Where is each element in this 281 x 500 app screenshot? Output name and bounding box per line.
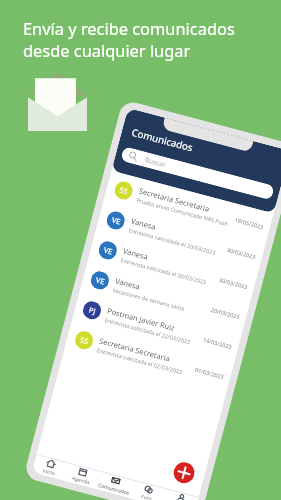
button[interactable]: Buscar xyxy=(120,146,275,200)
staticText: VE xyxy=(103,244,114,256)
staticText: SS xyxy=(79,334,90,346)
staticText: Entrevista cancelada el 20/03/2023 xyxy=(128,226,217,256)
staticText: Entrevista solicitada el 30/03/2023 xyxy=(120,256,207,285)
staticText: VE xyxy=(95,274,106,286)
staticText: 01/03/2023 xyxy=(194,366,225,380)
staticText: Envía y recibe comunicados xyxy=(23,17,235,39)
staticText: Vanesa xyxy=(114,275,142,292)
staticText: SS xyxy=(118,185,130,197)
staticText: Vanesa xyxy=(130,216,158,232)
staticText: Buscar xyxy=(144,155,167,169)
staticText: Agenda xyxy=(71,475,91,486)
staticText: 14/03/2023 xyxy=(202,336,233,350)
button[interactable]: VE xyxy=(88,231,258,303)
staticText: Postman Javier Ruiz xyxy=(106,305,176,333)
button[interactable]: Agenda xyxy=(64,462,100,488)
staticText: Inicio xyxy=(42,467,56,477)
button[interactable]: PJ xyxy=(72,290,242,363)
staticText: 20/03/2023 xyxy=(210,306,241,320)
staticText: 30/03/2023 xyxy=(226,246,257,260)
button[interactable]: SS xyxy=(64,320,234,393)
staticText: PJ xyxy=(88,305,97,316)
staticText: Entrevista solicitada el 02/03/2023 xyxy=(96,346,183,375)
button[interactable]: Comunicados xyxy=(96,471,133,497)
button[interactable]: Perfil xyxy=(161,488,199,500)
staticText: Vacaciones de semana santa xyxy=(112,286,185,312)
staticText: Comunicados xyxy=(97,482,130,497)
staticText: Secretaria Secretaria xyxy=(98,335,171,364)
button[interactable]: Nuevo comunicado xyxy=(171,460,197,486)
button[interactable]: SS xyxy=(103,171,274,243)
staticText: Vanesa xyxy=(122,245,150,262)
button[interactable]: VE xyxy=(80,261,250,333)
staticText: Comunicados xyxy=(130,126,194,154)
staticText: Entrevista solicitada el 22/03/2023 xyxy=(104,316,191,345)
button[interactable]: VE xyxy=(95,201,266,273)
button[interactable]: Inicio xyxy=(32,454,68,480)
button[interactable]: Foro xyxy=(129,479,166,500)
staticText: 30/03/2023 xyxy=(218,276,249,290)
staticText: 18/05/2023 xyxy=(234,216,265,230)
staticText: VE xyxy=(111,215,122,227)
staticText: Foro xyxy=(140,493,153,500)
staticText: Prueba envío Comunicado NRS Push xyxy=(136,196,229,227)
staticText: Secretaria Secretaria xyxy=(138,186,211,214)
staticText: desde cualquier lugar xyxy=(23,39,191,61)
